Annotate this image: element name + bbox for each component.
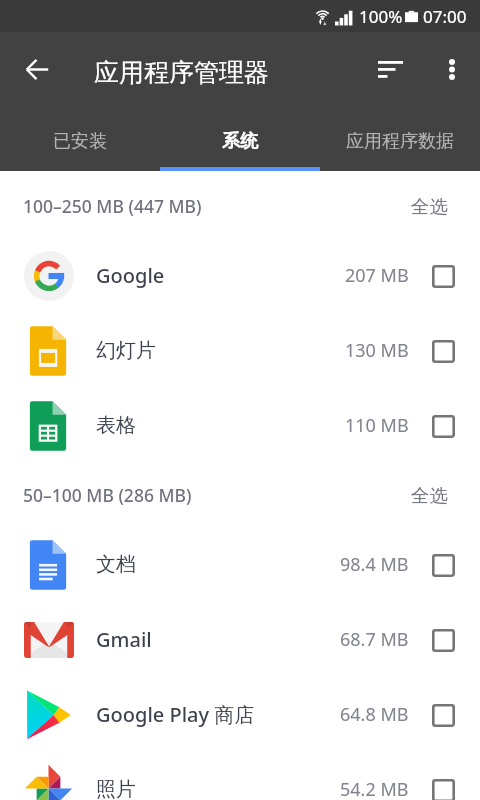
button[interactable]: 表格 <box>0 388 480 463</box>
button[interactable]: Select Google Play 商店 <box>421 693 465 737</box>
button[interactable]: 全选 <box>401 189 458 224</box>
staticText: 文档 <box>96 552 340 577</box>
staticText: 表格 <box>96 413 345 438</box>
button[interactable]: More options <box>428 45 476 93</box>
staticText: 系统 <box>222 130 258 153</box>
staticText: 98.4 MB <box>340 552 409 577</box>
staticText: 50–100 MB (286 MB) <box>23 483 192 507</box>
staticText: Google Play 商店 <box>96 701 340 728</box>
button[interactable]: Select Gmail <box>421 618 465 662</box>
button[interactable]: Select 表格 <box>421 404 465 448</box>
staticText: 130 MB <box>345 338 409 363</box>
button[interactable]: Back <box>13 45 61 93</box>
staticText: Google <box>96 262 345 289</box>
staticText: 已安装 <box>53 130 107 153</box>
button[interactable]: Gmail <box>0 602 480 677</box>
button[interactable]: Sort <box>366 45 414 93</box>
staticText: 幻灯片 <box>96 338 345 363</box>
staticText: 68.7 MB <box>340 627 409 652</box>
staticText: 54.2 MB <box>340 777 409 800</box>
button[interactable]: 已安装 <box>0 112 160 171</box>
staticText: 100% <box>359 5 403 28</box>
button[interactable]: Google Play 商店 <box>0 677 480 752</box>
staticText: 110 MB <box>345 413 409 438</box>
button[interactable]: 照片 <box>0 752 480 800</box>
button[interactable]: Google <box>0 238 480 313</box>
button[interactable]: Select 照片 <box>421 768 465 800</box>
staticText: Gmail <box>96 626 340 653</box>
button[interactable]: Select Google <box>421 254 465 298</box>
button[interactable]: Select 幻灯片 <box>421 329 465 373</box>
staticText: 207 MB <box>345 263 409 288</box>
button[interactable]: 幻灯片 <box>0 313 480 388</box>
staticText: 100–250 MB (447 MB) <box>23 194 202 218</box>
staticText: 应用程序数据 <box>346 130 454 153</box>
button[interactable]: Select 文档 <box>421 543 465 587</box>
button[interactable]: 文档 <box>0 527 480 602</box>
staticText: 07:00 <box>423 5 467 28</box>
staticText: 照片 <box>96 777 340 800</box>
staticText: 全选 <box>411 195 448 218</box>
staticText: 应用程序管理器 <box>94 57 269 88</box>
staticText: 64.8 MB <box>340 702 409 727</box>
staticText: 全选 <box>411 484 448 507</box>
button[interactable]: 全选 <box>401 478 458 513</box>
button[interactable]: 系统 <box>160 112 320 171</box>
button[interactable]: 应用程序数据 <box>320 112 480 171</box>
